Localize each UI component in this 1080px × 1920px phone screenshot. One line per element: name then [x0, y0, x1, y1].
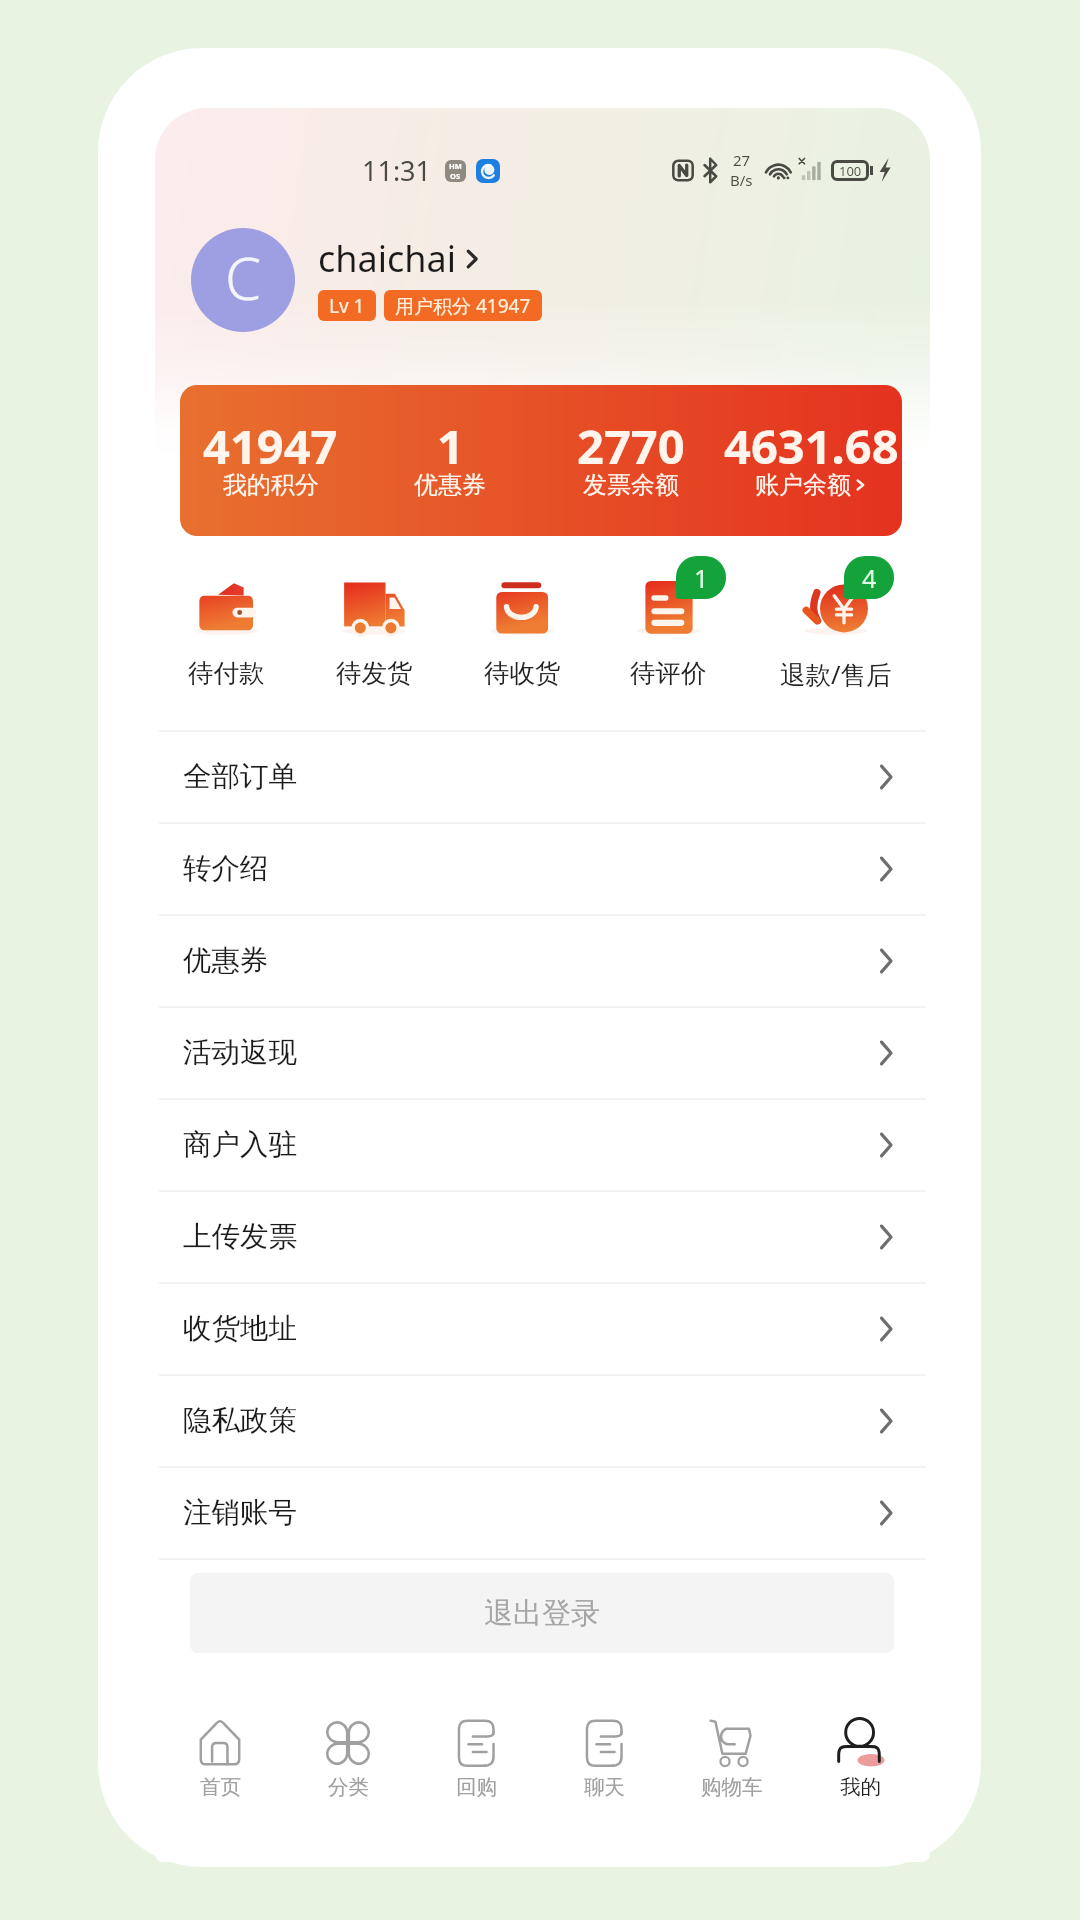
staticText: 11:31 — [362, 152, 432, 189]
staticText: 购物车 — [701, 1774, 763, 1800]
staticText: 用户积分 41947 — [395, 293, 531, 319]
staticText: HM — [449, 161, 462, 171]
button[interactable]: 活动返现 — [159, 1008, 926, 1098]
staticText: 我的积分 — [223, 470, 319, 500]
button[interactable]: 聊天 — [540, 1719, 668, 1800]
staticText: 退出登录 — [484, 1595, 600, 1632]
staticText: 隐私政策 — [183, 1403, 297, 1439]
staticText: 待发货 — [336, 657, 413, 689]
staticText: 1 — [694, 561, 709, 595]
staticText: 4 — [862, 561, 877, 595]
button[interactable]: 待付款 — [162, 559, 290, 689]
button[interactable]: 转介绍 — [159, 824, 926, 914]
button[interactable]: 分类 — [284, 1719, 412, 1800]
button[interactable]: 4631.68 — [721, 385, 902, 536]
staticText: 41947 — [203, 414, 338, 478]
button[interactable]: 回购 — [412, 1719, 540, 1800]
button[interactable]: 我的 — [796, 1719, 924, 1800]
button[interactable]: 2770 — [540, 385, 721, 536]
staticText: 上传发票 — [183, 1219, 297, 1255]
staticText: 收货地址 — [183, 1311, 297, 1347]
staticText: 分类 — [328, 1774, 369, 1800]
staticText: 优惠券 — [183, 943, 269, 979]
staticText: B/s — [730, 170, 753, 190]
button[interactable]: 上传发票 — [159, 1192, 926, 1282]
button[interactable]: 注销账号 — [159, 1468, 926, 1558]
staticText: 退款/售后 — [780, 657, 892, 692]
staticText: 2770 — [577, 414, 685, 478]
button[interactable]: 全部订单 — [159, 732, 926, 822]
staticText: 1 — [437, 414, 464, 478]
button[interactable]: 4 — [772, 559, 900, 692]
staticText: 27 — [733, 150, 751, 170]
staticText: 4631.68 — [724, 414, 899, 478]
button[interactable]: 商户入驻 — [159, 1100, 926, 1190]
staticText: OS — [450, 171, 461, 181]
staticText: chaichai — [318, 234, 457, 283]
button[interactable]: 待发货 — [310, 559, 438, 689]
staticText: 回购 — [456, 1774, 497, 1800]
staticText: 优惠券 — [414, 470, 486, 500]
staticText: 注销账号 — [183, 1495, 297, 1531]
button[interactable]: 隐私政策 — [159, 1376, 926, 1466]
button[interactable]: 1 — [360, 385, 540, 536]
staticText: 账户余额 — [755, 470, 851, 500]
staticText: 我的 — [840, 1774, 881, 1800]
staticText: 待付款 — [188, 657, 265, 689]
staticText: C — [225, 238, 262, 317]
button[interactable]: 待收货 — [458, 559, 586, 689]
staticText: 首页 — [200, 1774, 241, 1800]
staticText: 待收货 — [484, 657, 561, 689]
button[interactable]: 首页 — [156, 1719, 284, 1800]
button[interactable]: 优惠券 — [159, 916, 926, 1006]
staticText: 活动返现 — [183, 1035, 297, 1071]
button[interactable]: C — [191, 228, 542, 332]
staticText: 全部订单 — [183, 759, 297, 795]
button[interactable]: 1 — [604, 559, 732, 689]
staticText: 待评价 — [630, 657, 707, 689]
staticText: 100 — [839, 162, 862, 180]
button[interactable]: 购物车 — [668, 1719, 796, 1800]
staticText: 聊天 — [584, 1774, 625, 1800]
staticText: Lv 1 — [329, 293, 365, 319]
staticText: 转介绍 — [183, 851, 269, 887]
button[interactable]: 退出登录 — [190, 1573, 894, 1653]
staticText: 商户入驻 — [183, 1127, 297, 1163]
button[interactable]: 41947 — [180, 385, 360, 536]
button[interactable]: 收货地址 — [159, 1284, 926, 1374]
staticText: 发票余额 — [583, 470, 679, 500]
